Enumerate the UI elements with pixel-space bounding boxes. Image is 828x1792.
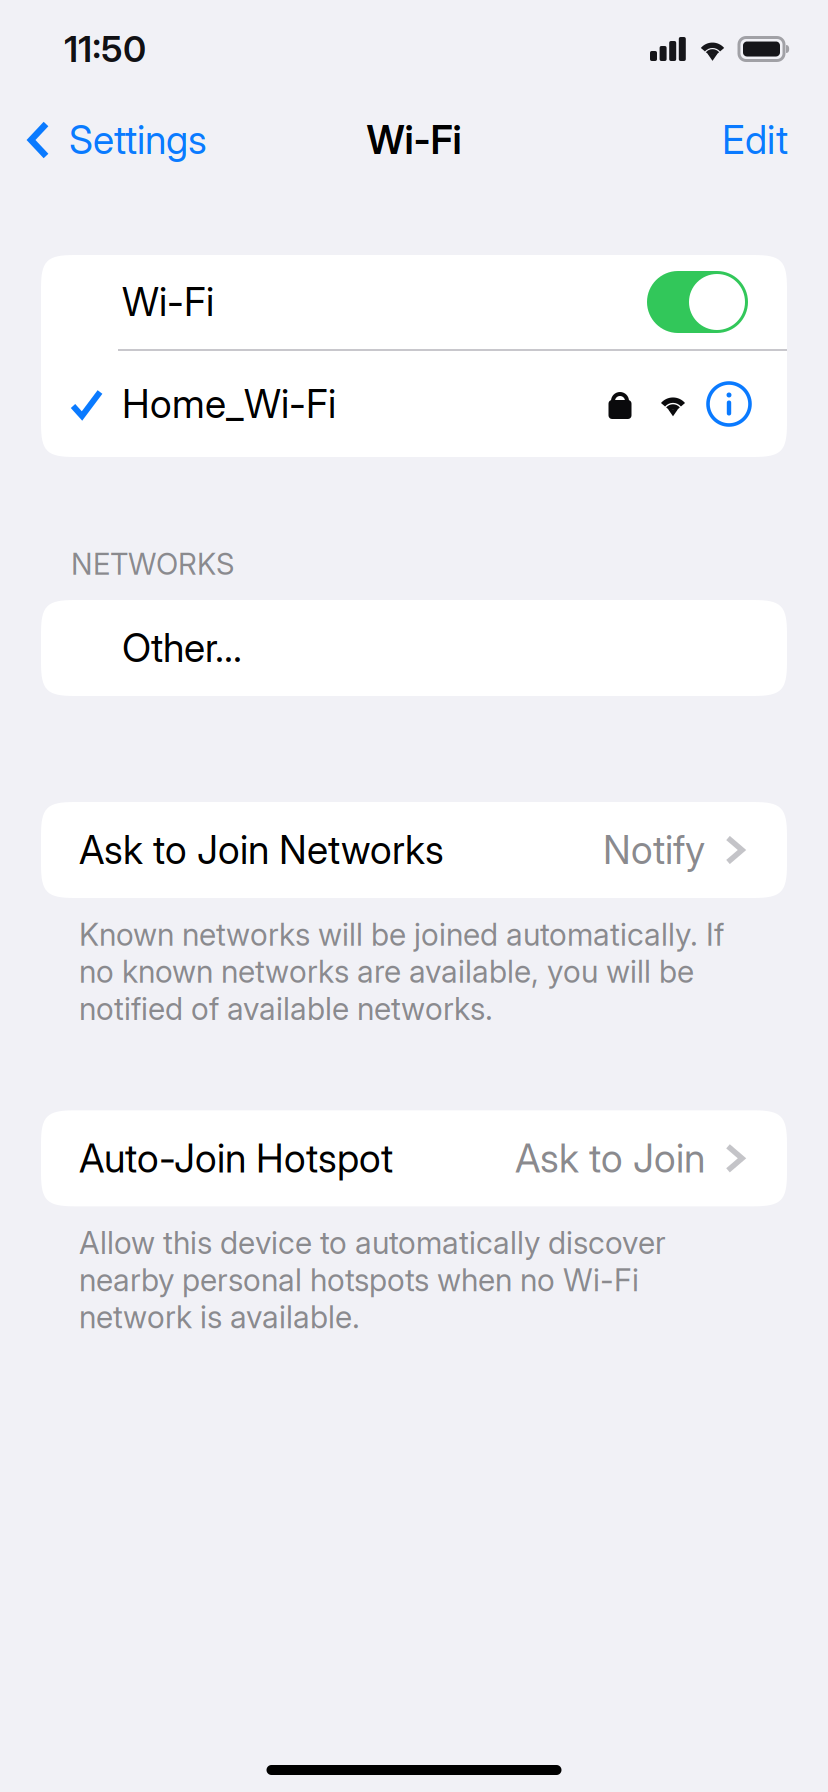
- staticText: Ask to Join Networks: [79, 827, 444, 873]
- staticText: NETWORKS: [71, 546, 234, 582]
- staticText: Wi-Fi: [366, 117, 461, 163]
- button[interactable]: Other...: [41, 600, 787, 696]
- staticText: Home_Wi-Fi: [122, 381, 336, 427]
- button[interactable]: Settings: [0, 98, 225, 182]
- staticText: Allow this device to automatically disco…: [79, 1224, 666, 1336]
- staticText: 11:50: [64, 27, 146, 71]
- staticText: Ask to Join: [515, 1135, 705, 1182]
- staticText: Known networks will be joined automatica…: [79, 916, 724, 1027]
- staticText: Wi-Fi: [122, 279, 214, 325]
- staticText: Other...: [122, 625, 242, 671]
- staticText: Auto-Join Hotspot: [79, 1135, 393, 1182]
- button[interactable]: Edit: [700, 98, 828, 182]
- button[interactable]: Ask to Join Networks: [41, 802, 787, 898]
- button[interactable]: Auto-Join Hotspot: [41, 1110, 787, 1206]
- button[interactable]: Wi-Fi: [41, 255, 787, 349]
- staticText: Settings: [69, 117, 207, 163]
- staticText: Edit: [722, 117, 788, 163]
- button[interactable]: Home_Wi-Fi: [41, 351, 787, 457]
- staticText: Notify: [603, 827, 705, 873]
